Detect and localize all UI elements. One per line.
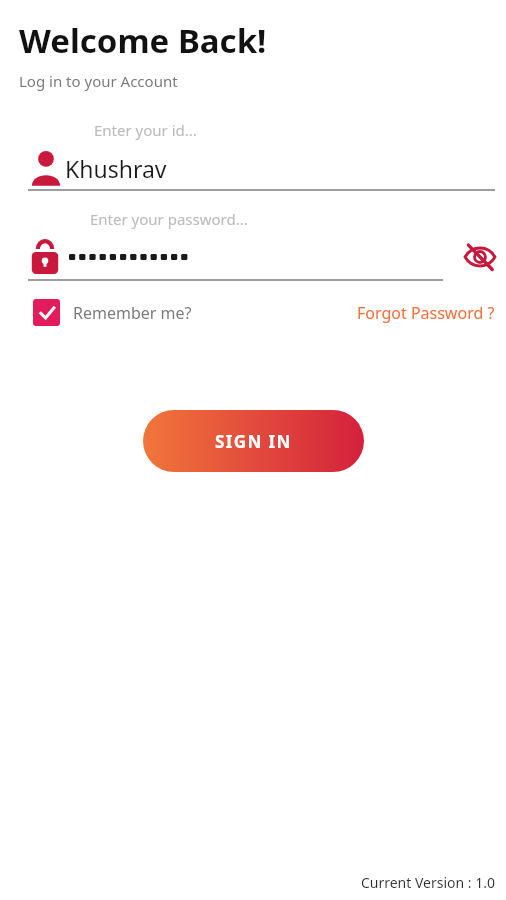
button[interactable]: Forgot Password ? <box>357 302 495 324</box>
button[interactable]: Remember me? <box>33 299 192 326</box>
button[interactable]: SIGN IN <box>143 410 364 472</box>
button[interactable]: Hide password <box>456 235 504 279</box>
staticText: Khushrav <box>65 153 167 184</box>
button[interactable]: Khushrav <box>0 147 506 189</box>
staticText: Welcome Back! <box>19 18 267 63</box>
staticText: Remember me? <box>73 302 192 324</box>
staticText: Current Version : 1.0 <box>360 873 495 892</box>
staticText: Enter your password... <box>90 209 248 229</box>
staticText: SIGN IN <box>215 430 292 453</box>
staticText: Log in to your Account <box>19 71 178 91</box>
staticText: Enter your id... <box>94 120 197 140</box>
